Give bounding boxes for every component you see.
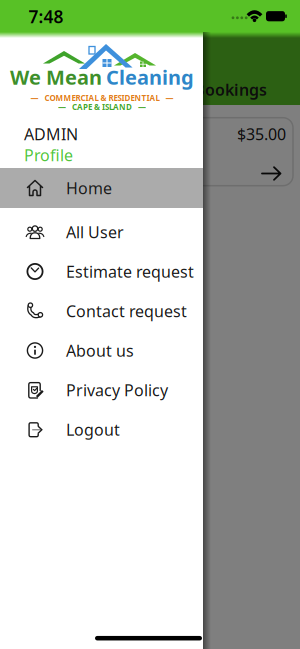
button[interactable]: Contact request (0, 291, 203, 331)
staticText: Profile (24, 144, 73, 166)
staticText: About us (66, 340, 134, 361)
staticText: Home (66, 177, 112, 199)
staticText: Estimate request (66, 261, 194, 282)
button[interactable]: Estimate request (0, 251, 203, 291)
button[interactable]: Profile (24, 144, 104, 166)
button[interactable]: Privacy Policy (0, 370, 203, 410)
staticText: We Mean (10, 64, 102, 90)
staticText: — COMMERCIAL & RESIDENTIAL — (30, 93, 173, 103)
button[interactable]: About us (0, 330, 203, 370)
staticText: Logout (66, 419, 120, 440)
staticText: Contact request (66, 300, 187, 322)
staticText: All User (66, 221, 124, 243)
button[interactable]: Logout (0, 409, 203, 449)
button[interactable]: All User (0, 212, 203, 252)
staticText: All Bookings (169, 79, 267, 100)
staticText: $35.00 (237, 123, 286, 145)
staticText: 7:48 (28, 5, 63, 28)
staticText: — CAPE & ISLAND — (58, 102, 146, 112)
button[interactable]: Home (0, 168, 203, 208)
staticText: Privacy Policy (66, 379, 168, 401)
staticText: ADMIN (24, 123, 78, 145)
staticText: Cleaning (106, 64, 194, 90)
